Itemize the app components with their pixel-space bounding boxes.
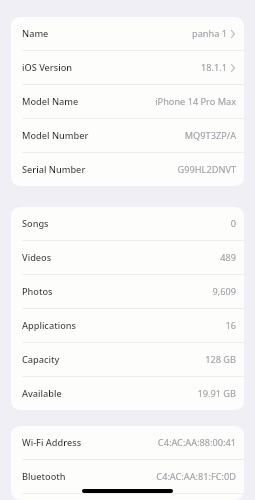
staticText: Name: [22, 27, 49, 40]
staticText: Serial Number: [22, 163, 86, 176]
staticText: Capacity: [22, 353, 60, 366]
button[interactable]: Capacity: [11, 343, 244, 376]
staticText: 9,609: [212, 285, 236, 298]
staticText: MQ9T3ZP/A: [184, 129, 236, 142]
button[interactable]: Model Number: [11, 119, 244, 152]
button[interactable]: Available: [11, 377, 244, 410]
staticText: Wi-Fi Address: [22, 436, 82, 449]
staticText: Bluetooth: [22, 470, 66, 483]
staticText: G99HL2DNVT: [177, 163, 236, 176]
button[interactable]: Applications: [11, 309, 244, 342]
staticText: panha 1: [192, 27, 227, 40]
staticText: 18.1.1: [201, 61, 227, 74]
button[interactable]: Name: [11, 17, 244, 50]
button[interactable]: Model Name: [11, 85, 244, 118]
staticText: C4:AC:AA:88:00:41: [157, 436, 236, 449]
staticText: iPhone 14 Pro Max: [155, 95, 236, 108]
staticText: Model Name: [22, 95, 79, 108]
button[interactable]: Bluetooth: [11, 460, 244, 493]
staticText: 0: [230, 217, 236, 230]
button[interactable]: Wi-Fi Address: [11, 426, 244, 459]
staticText: Model Number: [22, 129, 89, 142]
staticText: 16: [225, 319, 236, 332]
button[interactable]: Photos: [11, 275, 244, 308]
button[interactable]: Serial Number: [11, 153, 244, 186]
staticText: iOS Version: [22, 61, 73, 74]
staticText: Applications: [22, 319, 76, 332]
button[interactable]: Songs: [11, 207, 244, 240]
staticText: Photos: [22, 285, 53, 298]
button[interactable]: iOS Version: [11, 51, 244, 84]
button[interactable]: Videos: [11, 241, 244, 274]
staticText: 489: [220, 251, 236, 264]
staticText: 128 GB: [205, 353, 236, 366]
staticText: Available: [22, 387, 62, 400]
staticText: Songs: [22, 217, 49, 230]
staticText: 19.91 GB: [197, 387, 236, 400]
staticText: C4:AC:AA:81:FC:0D: [156, 470, 236, 483]
staticText: Videos: [22, 251, 52, 264]
